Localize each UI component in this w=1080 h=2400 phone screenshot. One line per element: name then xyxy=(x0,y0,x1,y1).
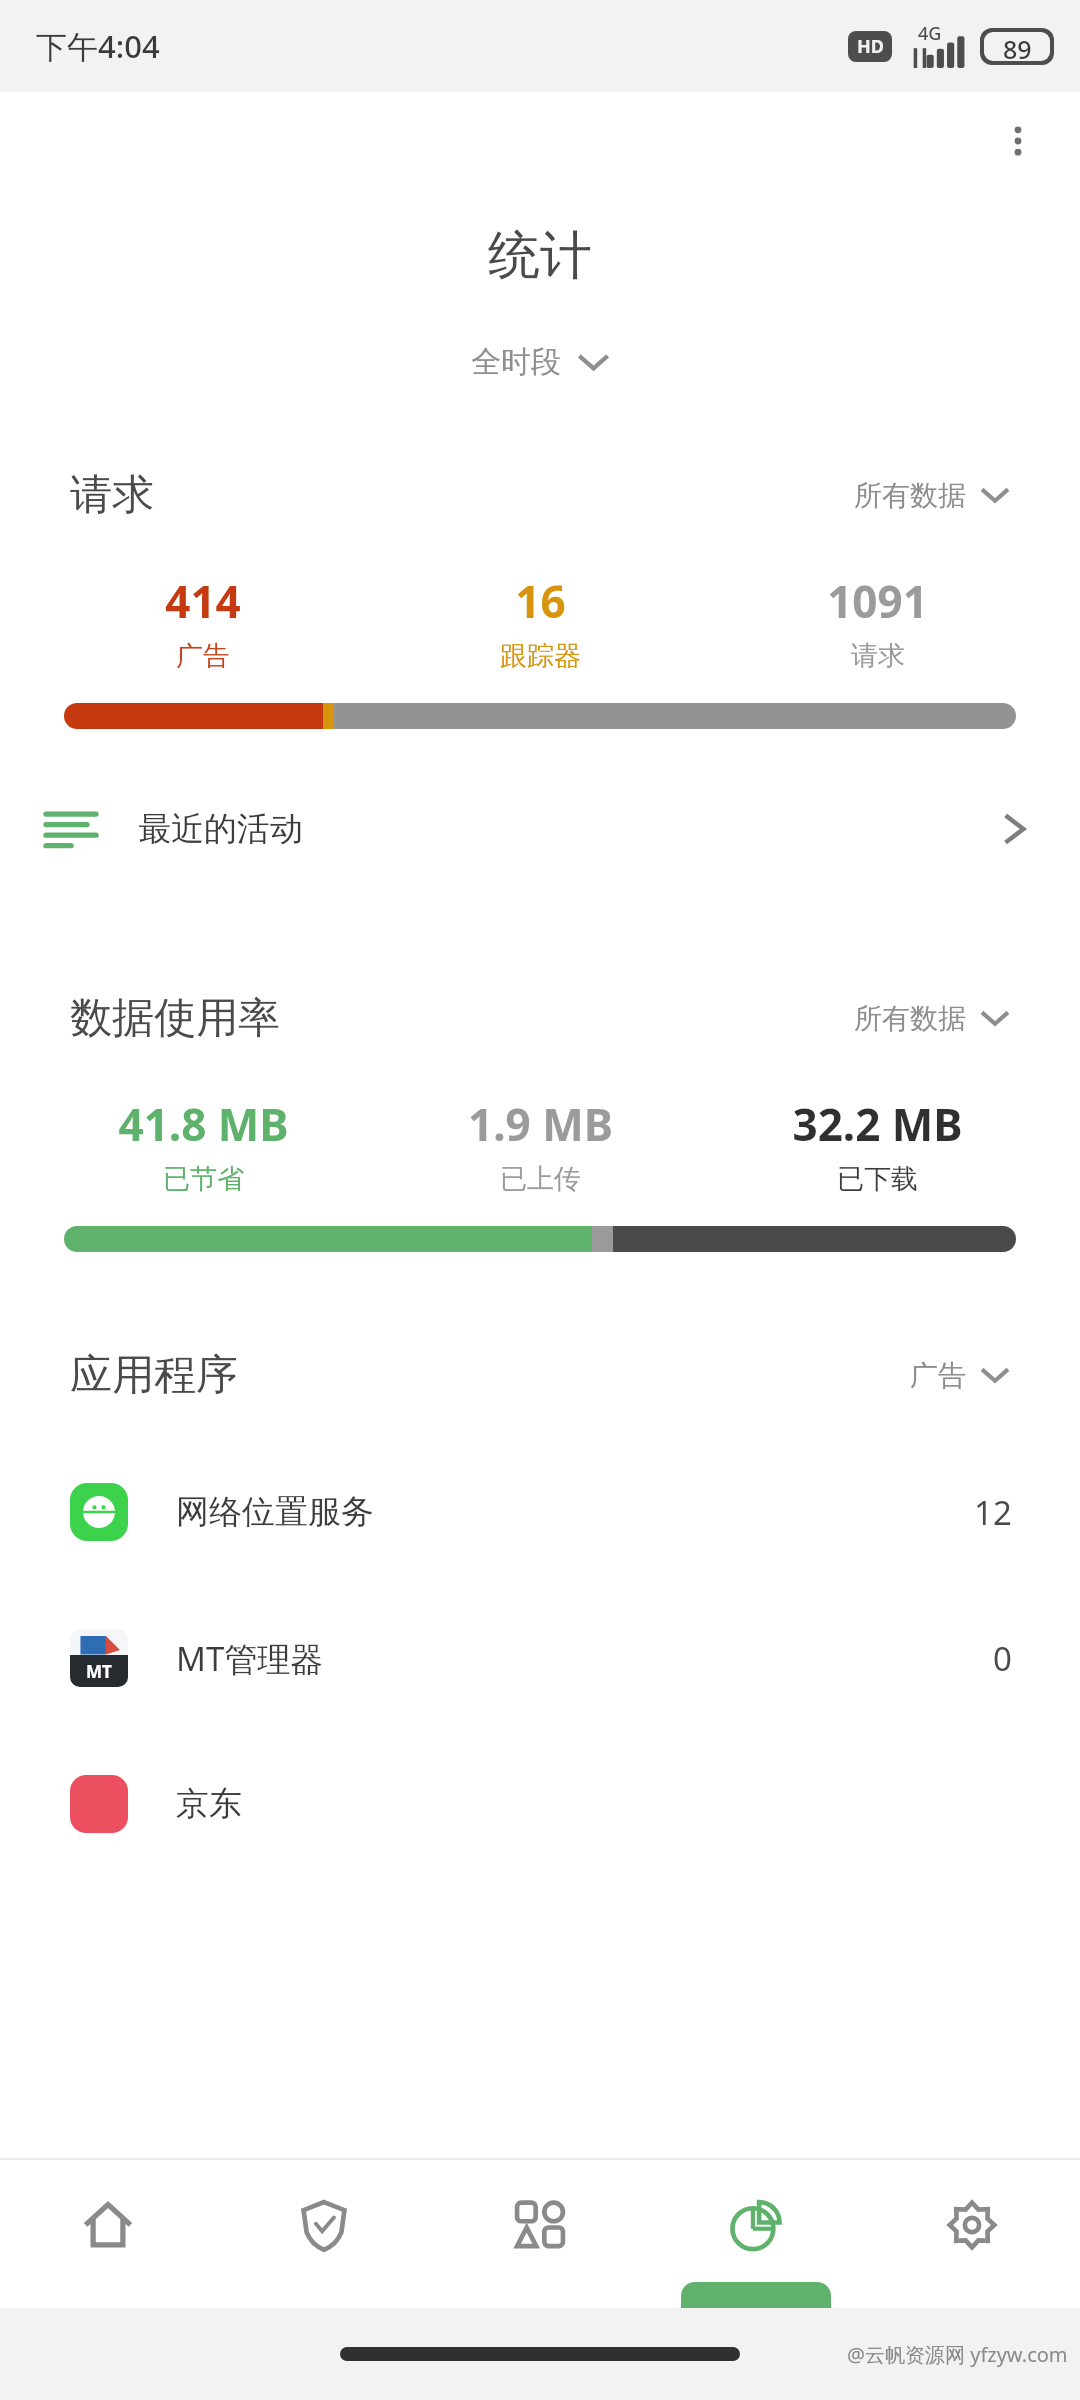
button[interactable]: Settings xyxy=(864,2160,1080,2308)
button[interactable]: Home xyxy=(0,2160,216,2308)
button[interactable]: 京东 xyxy=(0,1731,1080,1877)
staticText: 已节省 xyxy=(163,1162,244,1196)
staticText: 统计 xyxy=(488,223,592,289)
button[interactable]: 所有数据 xyxy=(854,466,1010,525)
staticText: 1091 xyxy=(827,571,928,631)
button[interactable]: 32.2 MB xyxy=(709,1094,1046,1196)
staticText: 广告 xyxy=(176,639,230,673)
button[interactable]: 1091 xyxy=(709,571,1046,673)
staticText: 数据使用率 xyxy=(70,992,280,1045)
staticText: MT管理器 xyxy=(176,1636,324,1681)
button[interactable]: Statistics xyxy=(648,2160,864,2308)
staticText: HD xyxy=(857,34,884,59)
button[interactable]: 所有数据 xyxy=(854,989,1010,1048)
staticText: 京东 xyxy=(176,1783,242,1825)
staticText: MT xyxy=(86,1660,112,1683)
button[interactable]: Protection xyxy=(216,2160,432,2308)
staticText: 下午4:04 xyxy=(36,25,160,67)
staticText: 414 xyxy=(165,571,241,631)
button[interactable]: MT xyxy=(0,1585,1080,1731)
staticText: @云帆资源网 yfzyw.com xyxy=(847,2341,1068,2368)
staticText: 所有数据 xyxy=(854,478,966,513)
staticText: 1.9 MB xyxy=(468,1094,613,1154)
staticText: 41.8 MB xyxy=(118,1094,289,1154)
staticText: 最近的活动 xyxy=(138,808,303,850)
button[interactable]: 网络位置服务 xyxy=(0,1439,1080,1585)
staticText: 89 xyxy=(1003,32,1032,61)
staticText: 所有数据 xyxy=(854,1001,966,1036)
button[interactable]: More options xyxy=(976,99,1060,183)
staticText: 网络位置服务 xyxy=(176,1491,374,1533)
button[interactable]: 414 xyxy=(34,571,372,673)
button[interactable]: 广告 xyxy=(910,1346,1010,1405)
staticText: 12 xyxy=(974,1490,1012,1535)
staticText: 广告 xyxy=(910,1358,966,1393)
staticText: 32.2 MB xyxy=(792,1094,963,1154)
button[interactable]: Apps xyxy=(432,2160,648,2308)
button[interactable]: 41.8 MB xyxy=(34,1094,372,1196)
staticText: 跟踪器 xyxy=(500,639,581,673)
staticText: 16 xyxy=(515,571,566,631)
staticText: 0 xyxy=(993,1636,1012,1681)
staticText: 4G xyxy=(918,21,942,46)
staticText: 请求 xyxy=(851,639,905,673)
button[interactable]: 全时段 xyxy=(0,322,1080,402)
staticText: 全时段 xyxy=(471,343,561,381)
button[interactable]: 最近的活动 xyxy=(0,773,1080,885)
staticText: 已上传 xyxy=(500,1162,581,1196)
staticText: 请求 xyxy=(70,469,154,522)
staticText: 应用程序 xyxy=(70,1349,238,1402)
button[interactable]: 1.9 MB xyxy=(372,1094,709,1196)
staticText: 已下载 xyxy=(837,1162,918,1196)
button[interactable]: 16 xyxy=(372,571,709,673)
